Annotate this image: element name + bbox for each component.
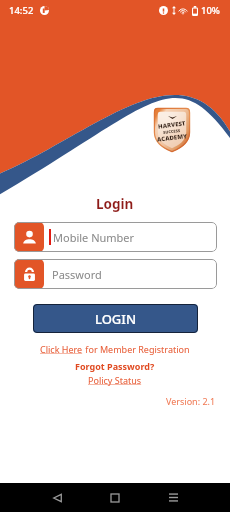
staticText: for Member Registration	[83, 343, 190, 355]
button[interactable]: Home	[86, 483, 144, 512]
staticText: Version: 2.1	[166, 395, 216, 407]
staticText: HARVEST	[158, 119, 186, 131]
button[interactable]: Recent apps	[144, 483, 202, 512]
staticText: 10%	[201, 4, 220, 17]
staticText: Click Here	[40, 343, 83, 355]
button[interactable]: Forgot Password?	[75, 360, 155, 372]
staticText: Password	[52, 267, 102, 282]
button[interactable]: Mobile Number	[14, 222, 217, 252]
staticText: ACADEMY	[157, 132, 187, 144]
button[interactable]: Click Here	[40, 343, 190, 355]
button[interactable]: Policy Status	[88, 374, 142, 386]
button[interactable]: LOGIN	[33, 304, 198, 333]
button[interactable]: Back	[28, 483, 86, 512]
staticText: 14:52	[9, 4, 34, 17]
button[interactable]: Password	[14, 259, 217, 289]
staticText: SUCCESS	[163, 128, 181, 135]
staticText: LOGIN	[95, 310, 137, 328]
staticText: Mobile Number	[53, 230, 135, 245]
staticText: Login	[96, 195, 134, 213]
